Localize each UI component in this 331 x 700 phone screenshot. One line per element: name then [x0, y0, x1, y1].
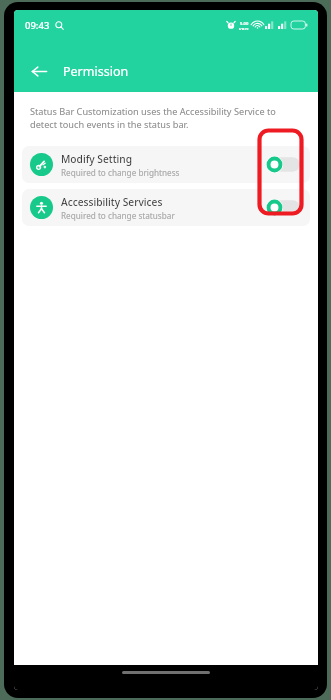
- button[interactable]: Accessibility Services: [22, 189, 310, 226]
- button[interactable]: Toggle permission: [266, 199, 300, 216]
- staticText: Status Bar Customization uses the Access…: [30, 105, 302, 131]
- staticText: 5.00: [240, 21, 249, 27]
- staticText: Accessibility Services: [61, 195, 163, 209]
- button[interactable]: Toggle permission: [266, 156, 300, 173]
- staticText: Required to change statusbar: [61, 210, 175, 221]
- staticText: Permission: [63, 63, 129, 80]
- button[interactable]: Back: [24, 56, 54, 86]
- staticText: KB/S: [239, 27, 249, 30]
- staticText: Modify Setting: [61, 152, 133, 166]
- staticText: Required to change brightness: [61, 167, 180, 178]
- staticText: 09:43: [25, 19, 50, 32]
- button[interactable]: Modify Setting: [22, 146, 310, 183]
